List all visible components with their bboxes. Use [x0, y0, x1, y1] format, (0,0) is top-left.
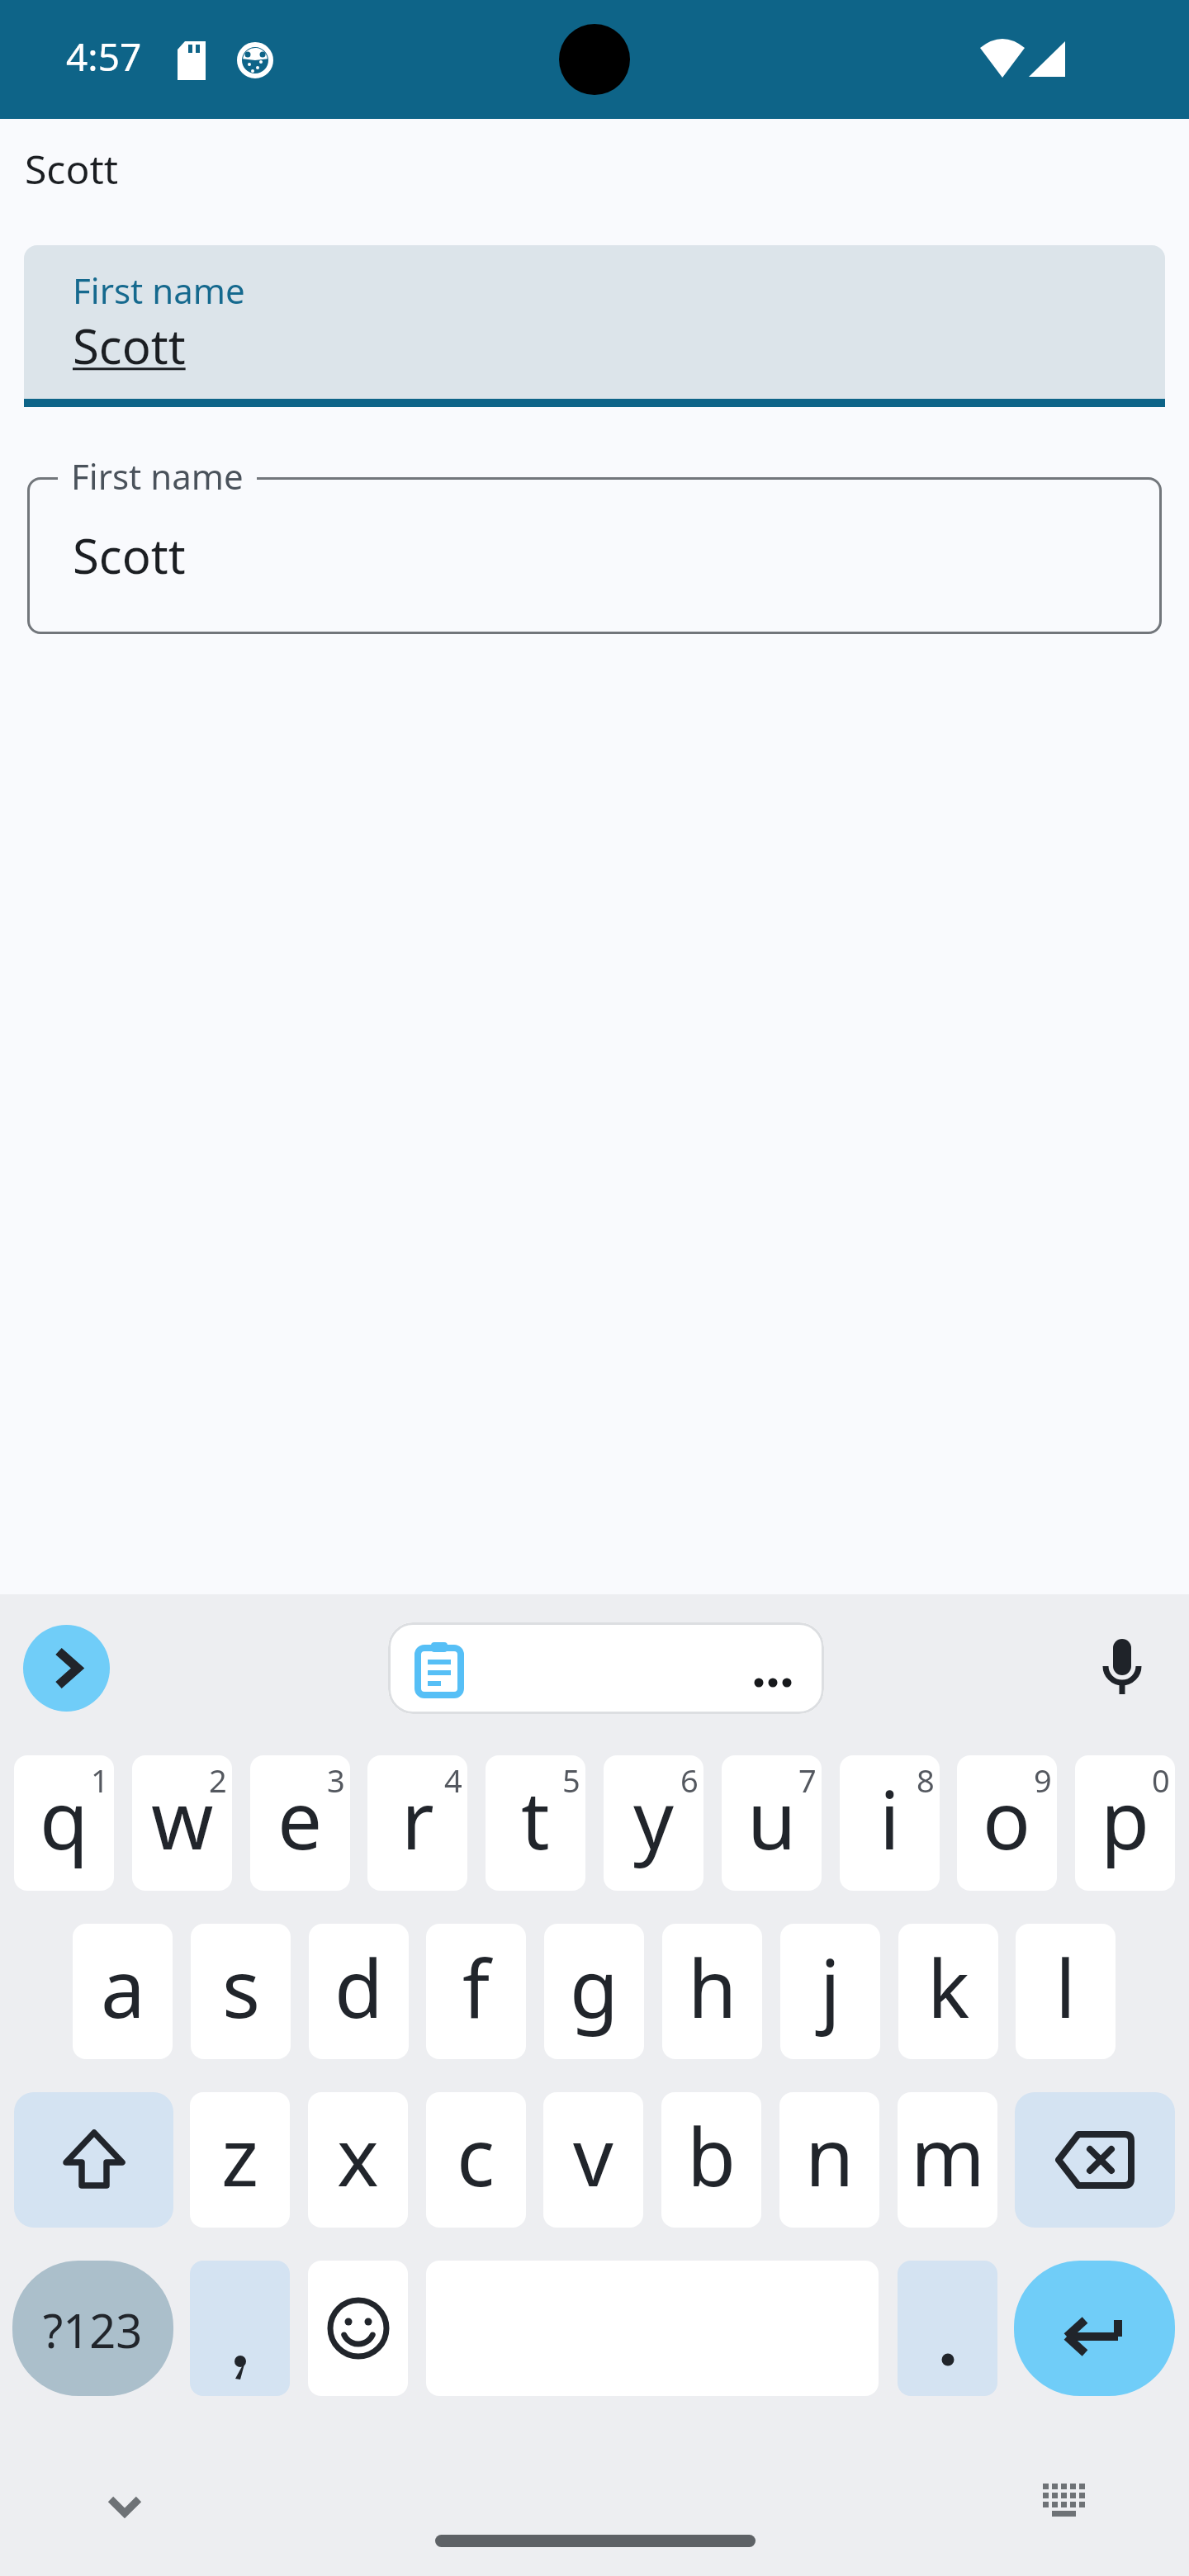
staticText: s	[222, 1933, 260, 2041]
button[interactable]: v	[543, 2092, 643, 2228]
staticText: a	[101, 1933, 145, 2041]
staticText: g	[570, 1933, 619, 2041]
button[interactable]: z	[190, 2092, 290, 2228]
staticText: 9	[1034, 1759, 1052, 1802]
staticText: c	[457, 2101, 495, 2209]
button[interactable]: x	[308, 2092, 408, 2228]
button[interactable]: b	[661, 2092, 761, 2228]
staticText: f	[462, 1933, 490, 2041]
staticText: First name	[73, 267, 245, 314]
staticText: 0	[1152, 1759, 1170, 1802]
button[interactable]: p	[1075, 1755, 1175, 1891]
button[interactable]: r	[367, 1755, 467, 1891]
staticText: y	[633, 1764, 674, 1873]
button[interactable]: w	[132, 1755, 232, 1891]
button[interactable]: m	[898, 2092, 997, 2228]
button[interactable]: ?123	[12, 2261, 173, 2396]
staticText: 6	[680, 1759, 699, 1802]
staticText: t	[521, 1764, 550, 1873]
staticText: i	[879, 1764, 900, 1873]
button[interactable]: t	[486, 1755, 585, 1891]
button[interactable]: j	[780, 1924, 880, 2059]
staticText: p	[1101, 1764, 1150, 1873]
staticText: 4:57	[66, 31, 142, 83]
staticText: 5	[562, 1759, 580, 1802]
staticText: m	[911, 2101, 985, 2209]
button[interactable]	[898, 2261, 997, 2396]
staticText: n	[805, 2101, 855, 2209]
staticText: 2	[209, 1759, 227, 1802]
button[interactable]: y	[604, 1755, 703, 1891]
button[interactable]: f	[426, 1924, 526, 2059]
staticText: j	[820, 1933, 841, 2041]
button[interactable]: i	[840, 1755, 940, 1891]
button[interactable]: s	[191, 1924, 291, 2059]
button[interactable]: c	[426, 2092, 526, 2228]
staticText: r	[401, 1764, 434, 1873]
button[interactable]: First name	[24, 245, 1165, 407]
staticText: ?123	[43, 2299, 143, 2361]
button[interactable]: e	[250, 1755, 350, 1891]
button[interactable]	[1014, 2261, 1175, 2396]
staticText: x	[337, 2101, 379, 2209]
button[interactable]	[190, 2261, 290, 2396]
staticText: h	[688, 1933, 737, 2041]
button[interactable]	[23, 1625, 110, 1712]
staticText: 4	[444, 1759, 462, 1802]
staticText: q	[40, 1764, 89, 1873]
button[interactable]	[388, 1622, 824, 1714]
button[interactable]: Scott	[27, 477, 1162, 634]
button[interactable]: d	[309, 1924, 409, 2059]
staticText: 1	[91, 1759, 109, 1802]
staticText: w	[151, 1764, 214, 1873]
staticText: Scott	[73, 523, 186, 588]
button[interactable]: n	[779, 2092, 879, 2228]
button[interactable]: o	[957, 1755, 1057, 1891]
staticText: b	[687, 2101, 737, 2209]
staticText: v	[573, 2101, 613, 2209]
staticText: First name	[71, 452, 244, 500]
button[interactable]: u	[722, 1755, 822, 1891]
staticText: 7	[798, 1759, 817, 1802]
button[interactable]: h	[662, 1924, 762, 2059]
button[interactable]: l	[1016, 1924, 1116, 2059]
button[interactable]	[1015, 2092, 1175, 2228]
staticText: l	[1055, 1933, 1076, 2041]
staticText: 3	[327, 1759, 345, 1802]
button[interactable]: k	[898, 1924, 998, 2059]
button[interactable]	[308, 2261, 408, 2396]
staticText: Scott	[73, 313, 186, 378]
staticText: u	[747, 1764, 797, 1873]
button[interactable]: g	[544, 1924, 644, 2059]
staticText: d	[334, 1933, 384, 2041]
button[interactable]: a	[73, 1924, 173, 2059]
staticText: e	[277, 1764, 323, 1873]
staticText: o	[983, 1764, 1031, 1873]
staticText: z	[221, 2101, 259, 2209]
staticText: Scott	[25, 142, 119, 196]
button[interactable]	[14, 2092, 173, 2228]
staticText: k	[927, 1933, 970, 2041]
staticText: 8	[917, 1759, 935, 1802]
button[interactable]: q	[14, 1755, 114, 1891]
